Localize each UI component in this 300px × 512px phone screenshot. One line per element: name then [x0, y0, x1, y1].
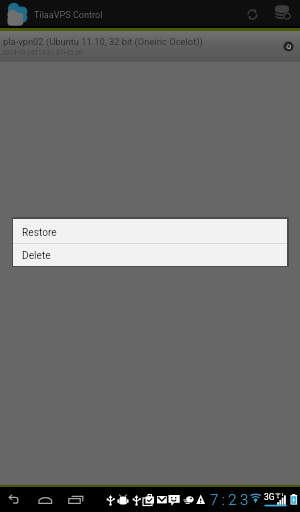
button[interactable]: Restore — [13, 219, 287, 243]
button[interactable]: Refresh — [240, 2, 264, 24]
button[interactable]: Back — [4, 489, 26, 511]
staticText: 2014-10-24T14:31.37+02:00 — [2, 49, 83, 57]
button[interactable]: TilaaVPS Control — [0, 0, 112, 26]
button[interactable]: Delete — [13, 244, 287, 266]
staticText: Delete — [22, 250, 51, 262]
staticText: 7:23 — [210, 491, 252, 509]
button[interactable]: Recent apps — [65, 489, 87, 511]
button[interactable]: Home — [34, 489, 56, 511]
button[interactable]: Server status — [283, 41, 294, 52]
staticText: pla-vpn02 (Ubuntu 11.10, 32 bit (Oneiric… — [3, 36, 203, 47]
staticText: Restore — [22, 227, 57, 239]
staticText: 3G — [264, 492, 275, 502]
button[interactable]: Backups — [270, 2, 294, 24]
button[interactable]: pla-vpn02 (Ubuntu 11.10, 32 bit (Oneiric… — [0, 31, 300, 62]
staticText: TilaaVPS Control — [34, 10, 103, 21]
